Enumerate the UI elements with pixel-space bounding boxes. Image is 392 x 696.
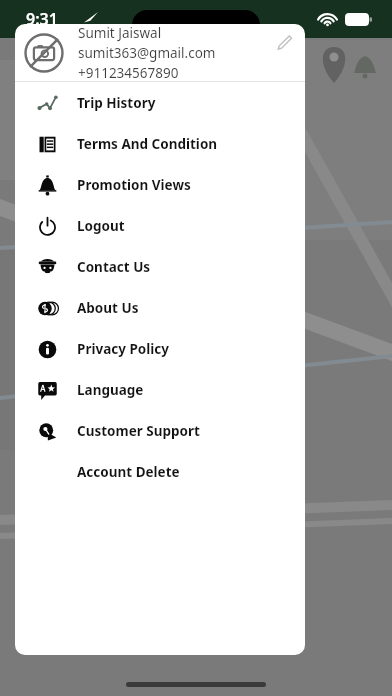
- button[interactable]: Contact Us: [15, 246, 305, 287]
- button[interactable]: Sumit Jaiswal: [15, 24, 305, 81]
- button[interactable]: Customer Support: [15, 410, 305, 451]
- button[interactable]: Logout: [15, 205, 305, 246]
- staticText: Trip History: [77, 94, 156, 112]
- button[interactable]: About Us: [15, 287, 305, 328]
- staticText: Promotion Views: [77, 176, 191, 194]
- staticText: Customer Support: [77, 422, 200, 440]
- staticText: Logout: [77, 217, 125, 235]
- button[interactable]: Trip History: [15, 82, 305, 123]
- button[interactable]: Promotion Views: [15, 164, 305, 205]
- staticText: 9:31: [26, 8, 58, 30]
- staticText: About Us: [77, 299, 139, 317]
- staticText: Privacy Policy: [77, 340, 169, 358]
- button[interactable]: Privacy Policy: [15, 328, 305, 369]
- staticText: Language: [77, 381, 144, 399]
- button[interactable]: Edit profile: [269, 27, 299, 57]
- staticText: Terms And Condition: [77, 135, 218, 153]
- button[interactable]: Account Delete: [15, 451, 305, 492]
- staticText: +911234567890: [78, 64, 179, 81]
- button[interactable]: Terms And Condition: [15, 123, 305, 164]
- staticText: Contact Us: [77, 258, 151, 276]
- button[interactable]: Language: [15, 369, 305, 410]
- staticText: sumit363@gmail.com: [78, 44, 216, 62]
- staticText: Sumit Jaiswal: [78, 24, 162, 42]
- staticText: Account Delete: [77, 463, 180, 481]
